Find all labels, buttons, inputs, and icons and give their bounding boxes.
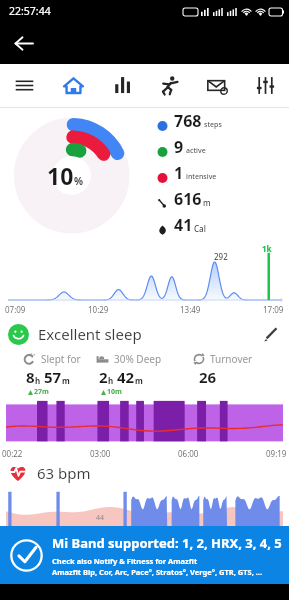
staticText: Mi Band supported: 1, 2, HRX, 3, 4, 5 — [52, 534, 282, 552]
staticText: Excellent sleep — [38, 324, 142, 344]
staticText: Slept for — [41, 352, 81, 366]
button[interactable]: Back — [6, 26, 40, 60]
staticText: 41 — [174, 214, 193, 236]
staticText: 30% Deep — [114, 352, 162, 366]
button[interactable]: Menu — [0, 64, 49, 107]
button[interactable]: Home — [49, 64, 97, 107]
staticText: intensive — [186, 172, 217, 182]
staticText: 03:00 — [90, 448, 111, 459]
staticText: 10:29 — [88, 304, 109, 315]
staticText: Turnover — [210, 352, 253, 366]
staticText: 1k — [262, 243, 272, 254]
staticText: h — [108, 375, 114, 386]
staticText: h — [35, 375, 41, 386]
staticText: m — [135, 375, 143, 386]
button[interactable]: Mi Band supported: 1, 2, HRX, 3, 4, 5 — [0, 526, 289, 584]
staticText: Amazfit Bip, Cor, Arc, Pace°, Stratos°, … — [52, 567, 263, 577]
staticText: 1 — [174, 162, 184, 184]
staticText: 9 — [174, 136, 184, 158]
staticText: 00:22 — [2, 448, 23, 459]
button[interactable]: Settings — [241, 64, 289, 107]
staticText: 57 — [44, 367, 62, 387]
staticText: 27m — [34, 387, 49, 397]
button[interactable]: Messages — [193, 64, 241, 107]
staticText: 26 — [199, 367, 217, 387]
staticText: 8 — [26, 367, 35, 387]
button[interactable]: 63 bpm — [0, 460, 289, 526]
button[interactable]: Statistics — [97, 64, 145, 107]
staticText: 13:49 — [180, 304, 201, 315]
staticText: m — [62, 375, 70, 386]
staticText: 616 — [174, 188, 202, 210]
staticText: 292 — [214, 251, 228, 262]
staticText: Check also Notify & Fitness for Amazfit — [52, 556, 198, 566]
staticText: Cal — [194, 223, 206, 234]
staticText: 63 bpm — [37, 463, 91, 483]
staticText: 09:19 — [266, 448, 287, 459]
staticText: 17:09 — [263, 304, 284, 315]
button[interactable]: Activity — [145, 64, 193, 107]
staticText: 22:57:44 — [9, 4, 51, 18]
button[interactable]: Edit sleep — [257, 321, 283, 347]
staticText: 10 — [47, 160, 74, 191]
staticText: 07:09 — [5, 304, 26, 315]
staticText: % — [74, 174, 84, 188]
staticText: 10m — [107, 387, 122, 397]
button[interactable]: 00:22 — [0, 400, 289, 460]
button[interactable]: 10 — [0, 108, 289, 238]
staticText: 2 — [99, 367, 108, 387]
staticText: 42 — [117, 367, 135, 387]
staticText: 06:00 — [178, 448, 199, 459]
staticText: steps — [204, 120, 222, 130]
staticText: m — [203, 197, 211, 208]
button[interactable]: Excellent sleep — [0, 318, 289, 347]
staticText: 44 — [96, 513, 105, 523]
button[interactable]: 292 — [0, 238, 289, 318]
staticText: active — [186, 146, 206, 156]
staticText: 768 — [174, 110, 202, 132]
